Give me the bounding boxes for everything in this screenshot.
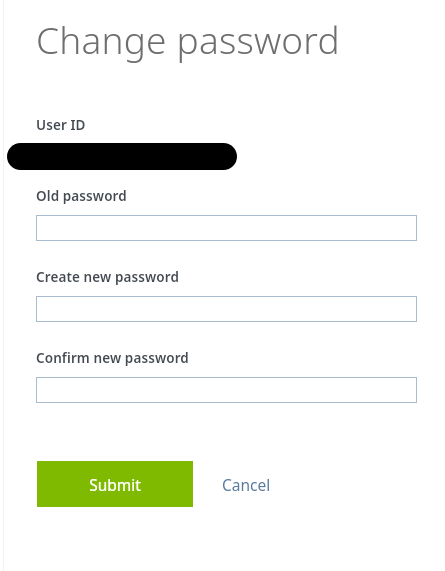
button[interactable]: Submit [37, 461, 193, 507]
button[interactable] [36, 215, 417, 241]
staticText: Old password [36, 187, 127, 205]
staticText: User ID [36, 116, 86, 134]
staticText: Cancel [222, 474, 271, 495]
button[interactable] [36, 377, 417, 403]
staticText: Change password [36, 14, 340, 64]
staticText: Confirm new password [36, 349, 189, 367]
other: User ID value hidden [7, 143, 237, 170]
button[interactable]: Cancel [220, 468, 273, 501]
staticText: Submit [89, 474, 141, 495]
staticText: Create new password [36, 268, 179, 286]
button[interactable] [36, 296, 417, 322]
